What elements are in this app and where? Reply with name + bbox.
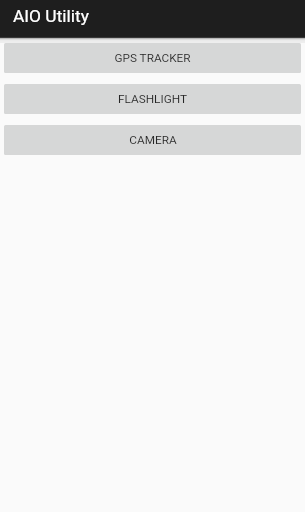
staticText: FLASHLIGHT bbox=[118, 92, 187, 106]
button[interactable]: GPS TRACKER bbox=[4, 43, 301, 73]
staticText: AIO Utility bbox=[13, 6, 89, 26]
staticText: CAMERA bbox=[129, 133, 177, 147]
button[interactable]: CAMERA bbox=[4, 125, 301, 155]
button[interactable]: FLASHLIGHT bbox=[4, 84, 301, 114]
staticText: GPS TRACKER bbox=[114, 51, 191, 65]
